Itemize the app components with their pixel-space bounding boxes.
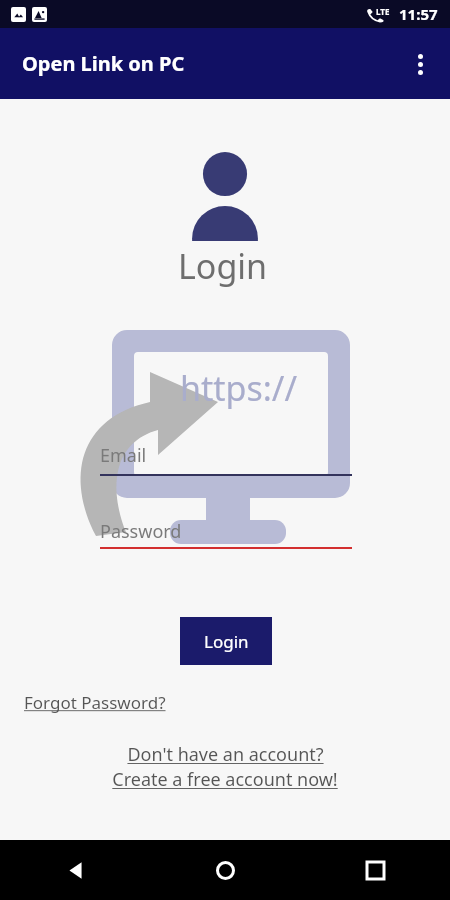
staticText: Open Link on PC (22, 50, 185, 77)
staticText: Email (100, 443, 147, 468)
button[interactable]: Recent apps (300, 840, 450, 900)
button[interactable]: Login (180, 617, 272, 665)
staticText: Login (178, 243, 268, 289)
staticText: Create a free account now! (112, 767, 338, 792)
staticText: https:// (180, 365, 298, 411)
staticText: Don't have an account? (127, 742, 324, 767)
staticText: LTE (376, 6, 390, 17)
staticText: Login (204, 630, 249, 653)
staticText: Forgot Password? (24, 691, 166, 714)
button[interactable]: Home (150, 840, 300, 900)
staticText: Password (100, 519, 182, 544)
button[interactable]: Back (0, 840, 150, 900)
button[interactable]: Don't have an account? (0, 742, 450, 792)
staticText: 11:57 (399, 4, 438, 24)
button[interactable]: More options (398, 42, 442, 86)
button[interactable]: Forgot Password? (24, 691, 166, 714)
